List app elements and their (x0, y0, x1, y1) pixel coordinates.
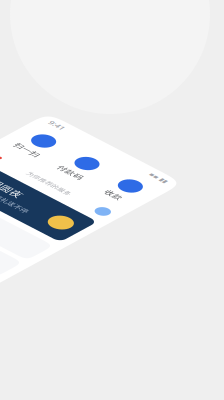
staticText: 中秋团圆夜 (38, 240, 158, 269)
staticText: 为你推荐的服务 (111, 174, 216, 192)
staticText: ‹ (20, 165, 28, 200)
staticText: 扫一扫 (30, 114, 87, 137)
